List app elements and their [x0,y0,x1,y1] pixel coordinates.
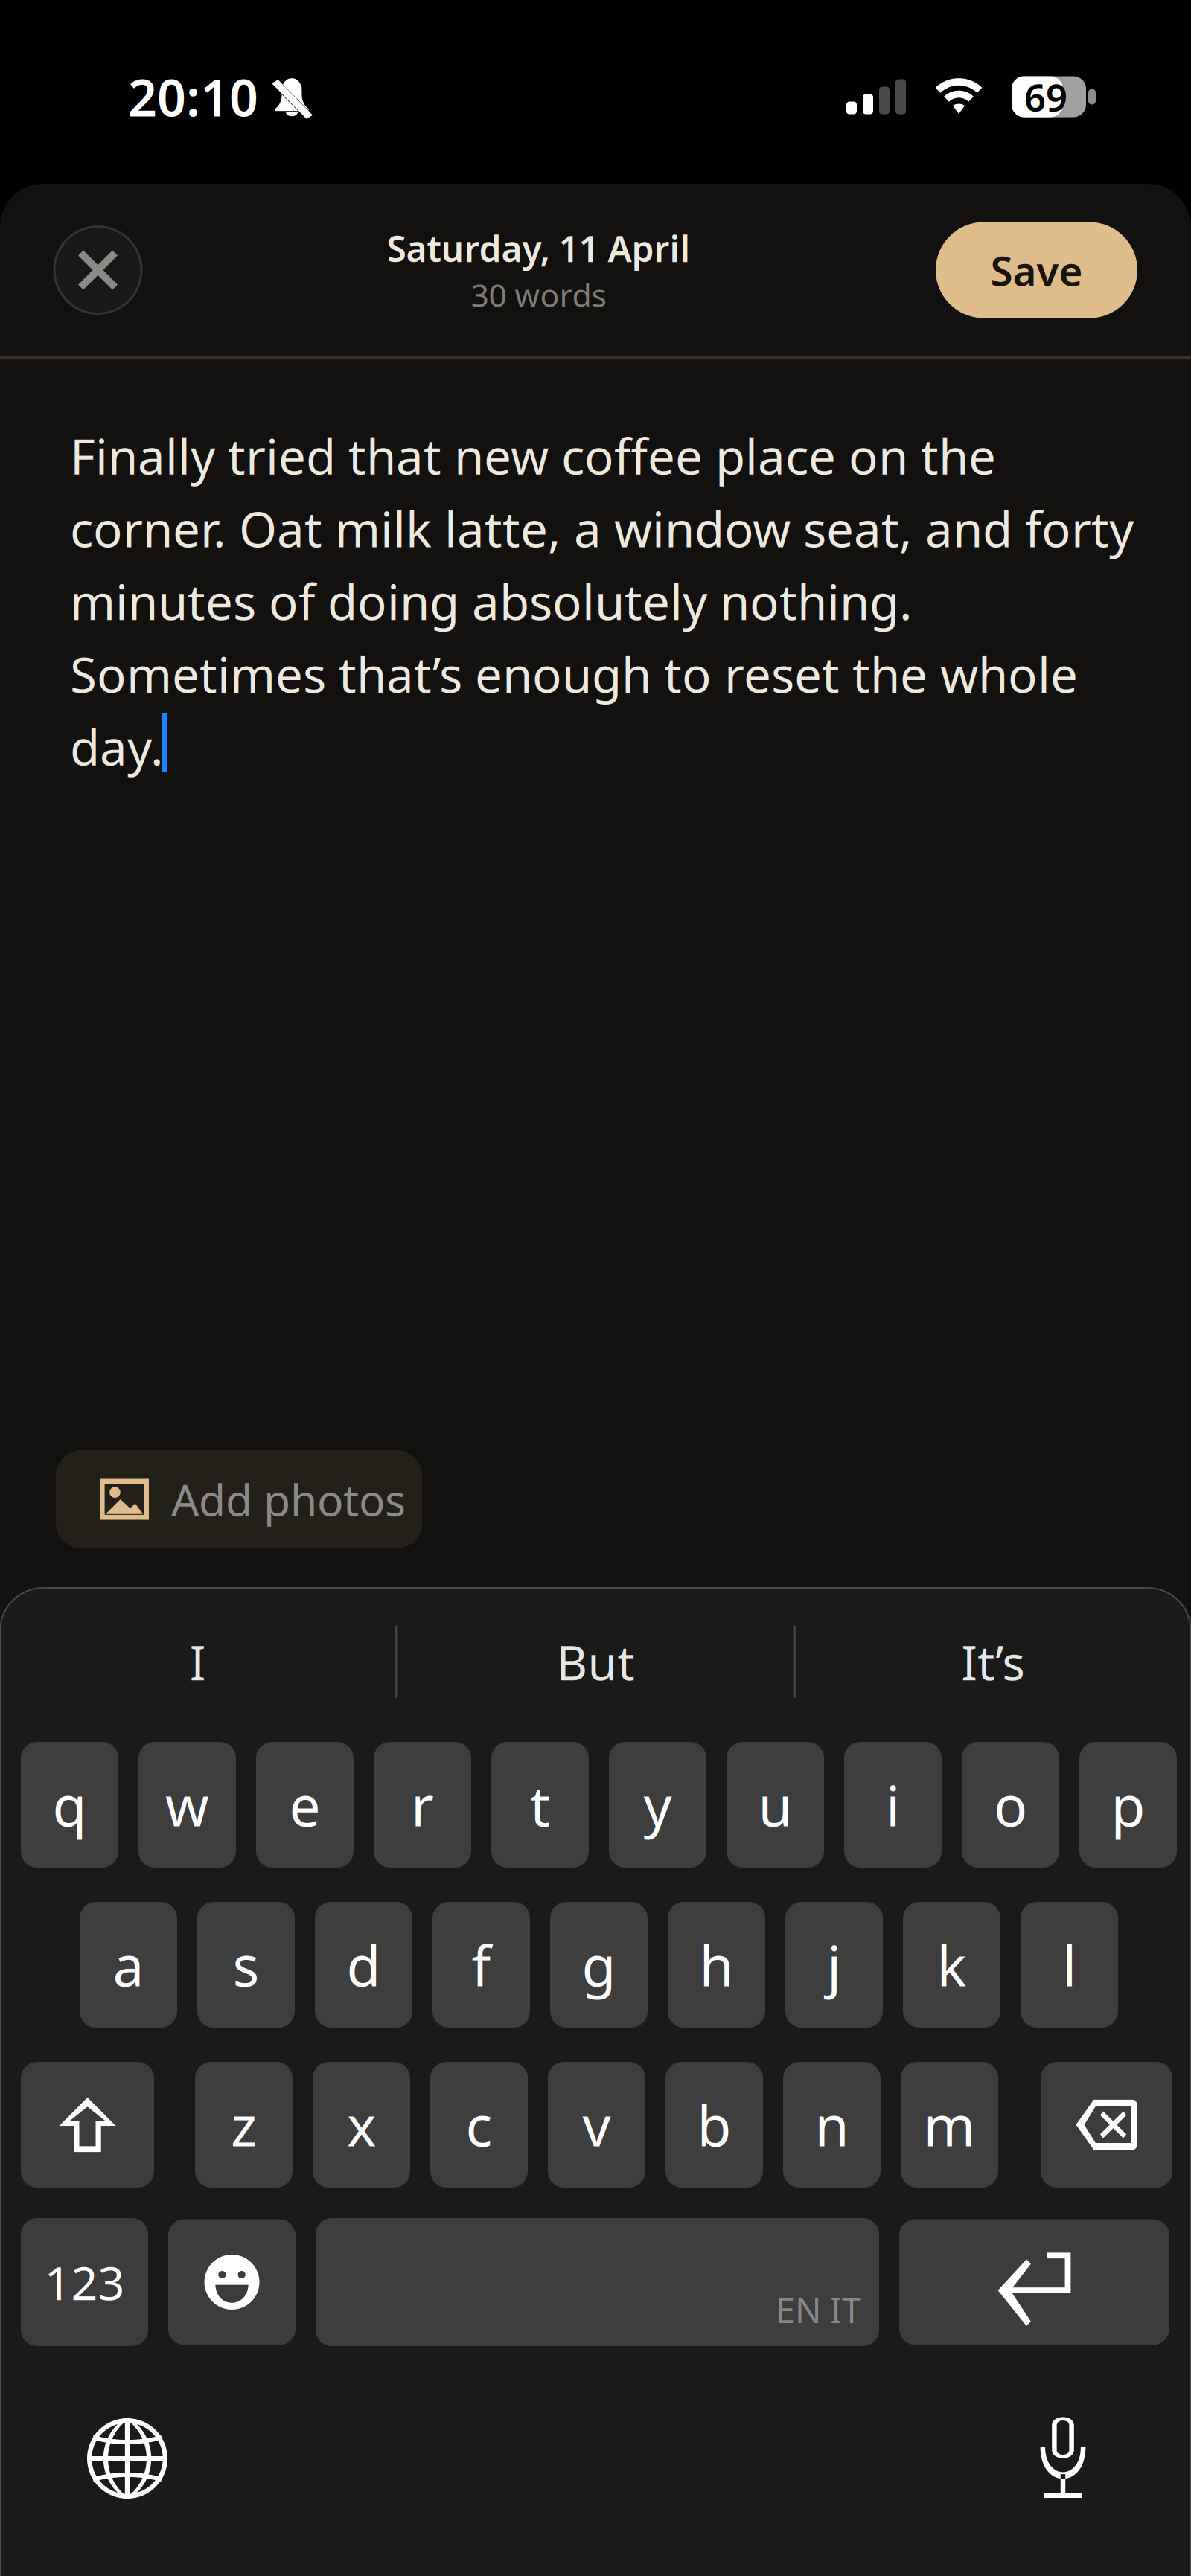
button[interactable]: r [374,1742,471,1868]
staticText: Saturday, 11 April [387,225,690,272]
staticText: s [233,1928,259,2002]
button[interactable]: a [80,1902,177,2028]
button[interactable]: l [1021,1902,1118,2028]
button[interactable]: Emoji [168,2219,296,2345]
button[interactable]: i [844,1742,942,1868]
staticText: t [530,1768,550,1842]
staticText: e [289,1768,320,1842]
staticText: r [411,1768,434,1842]
button[interactable]: Return [899,2219,1169,2345]
staticText: But [556,1630,635,1694]
button[interactable]: z [195,2062,293,2188]
staticText: EN IT [776,2287,861,2333]
button[interactable]: Next keyboard [87,2418,167,2499]
staticText: z [231,2088,257,2162]
button[interactable]: b [665,2062,763,2188]
button[interactable]: Dictate [1035,2413,1091,2498]
button[interactable]: w [138,1742,236,1868]
button[interactable]: q [21,1742,118,1868]
staticText: n [815,2088,849,2162]
staticText: Save [990,243,1083,297]
staticText: a [113,1928,144,2002]
button[interactable]: d [315,1902,412,2028]
button[interactable]: It’s [796,1626,1191,1698]
staticText: x [347,2088,376,2162]
staticText: i [886,1768,900,1842]
button[interactable]: m [901,2062,998,2188]
button[interactable]: EN IT [316,2218,879,2346]
button[interactable]: t [491,1742,589,1868]
staticText: 69 [1024,72,1067,122]
button[interactable]: I [0,1626,395,1698]
button[interactable]: Shift [21,2062,154,2188]
staticText: p [1111,1768,1145,1842]
button[interactable]: g [550,1902,648,2028]
button[interactable]: Save [936,222,1137,318]
button[interactable]: o [962,1742,1059,1868]
button[interactable]: j [785,1902,883,2028]
staticText: l [1062,1928,1076,2002]
staticText: 20:10 [128,63,258,130]
staticText: I [190,1630,206,1694]
button[interactable]: k [903,1902,1000,2028]
staticText: 123 [44,2251,125,2313]
button[interactable]: p [1079,1742,1177,1868]
button[interactable]: x [313,2062,410,2188]
button[interactable]: 123 [21,2218,148,2346]
staticText: c [466,2088,492,2162]
staticText: y [644,1768,672,1842]
staticText: Add photos [171,1470,406,1528]
staticText: Finally tried that new coffee place on t… [70,423,1134,779]
staticText: It’s [961,1630,1025,1694]
button[interactable]: h [668,1902,765,2028]
button[interactable]: But [398,1626,793,1698]
button[interactable]: Delete [1041,2062,1172,2188]
button[interactable]: f [432,1902,530,2028]
staticText: u [758,1768,792,1842]
button[interactable]: c [430,2062,528,2188]
staticText: j [827,1928,841,2002]
staticText: v [582,2088,611,2162]
staticText: q [52,1768,87,1842]
staticText: w [165,1768,209,1842]
button[interactable]: v [548,2062,645,2188]
button[interactable]: n [783,2062,881,2188]
button[interactable]: u [727,1742,824,1868]
staticText: 30 words [471,273,606,316]
button[interactable]: Add photos [56,1450,422,1548]
staticText: b [697,2088,731,2162]
staticText: k [937,1928,967,2002]
button[interactable]: s [197,1902,295,2028]
button[interactable]: y [609,1742,706,1868]
button[interactable]: e [256,1742,354,1868]
staticText: h [699,1928,734,2002]
staticText: m [923,2088,976,2162]
button[interactable]: Close [54,227,141,314]
staticText: d [347,1928,381,2002]
staticText: o [994,1768,1027,1842]
staticText: f [472,1928,491,2002]
staticText: g [582,1928,616,2002]
